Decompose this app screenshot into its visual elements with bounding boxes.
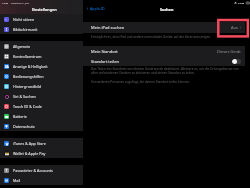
button[interactable]: Passwörter & Accounts — [0, 165, 83, 175]
button[interactable]: Touch ID & Code — [0, 101, 83, 111]
staticText: AA — [5, 65, 9, 69]
button[interactable]: Datenschutz — [0, 121, 83, 131]
button[interactable]: Apple-ID — [83, 6, 107, 11]
staticText: 14:35 — [2, 1, 9, 4]
button[interactable]: Wallet & Apple Pay — [0, 148, 83, 158]
staticText: Apple-ID — [90, 6, 105, 11]
staticText: Von anderen Personen zugefügt, die deine… — [91, 80, 190, 84]
button[interactable]: iTunes & App Store — [0, 138, 83, 148]
staticText: Mein Standort — [91, 49, 118, 54]
button[interactable]: Bildschirmzeit — [0, 24, 83, 34]
staticText: Dienstag 4. Juni — [11, 1, 30, 4]
button[interactable]: Standort teilen — [232, 59, 241, 64]
button[interactable]: Hintergrundbild — [0, 81, 83, 91]
button[interactable]: Allgemein — [0, 41, 83, 51]
staticText: Suchen — [160, 7, 174, 12]
button[interactable]: Mail — [0, 175, 83, 185]
button[interactable]: Kontrollzentrum — [0, 51, 83, 61]
button[interactable]: Nicht stören — [0, 14, 83, 24]
staticText: Passwörter & Accounts — [13, 168, 53, 173]
staticText: Einstellungen — [32, 7, 57, 12]
staticText: Aus — [231, 25, 238, 30]
button[interactable]: Siri & Suchen — [0, 91, 83, 101]
staticText: iTunes & App Store — [13, 141, 46, 146]
button[interactable]: Standort teilen — [83, 56, 245, 66]
staticText: Hintergrundbild — [13, 84, 41, 89]
staticText: Datenschutz — [13, 124, 35, 129]
staticText: Batterie — [13, 114, 27, 119]
staticText: Nicht stören — [13, 17, 35, 22]
staticText: Siri & Suchen — [13, 94, 36, 99]
staticText: Mein iPad suchen — [91, 25, 125, 30]
staticText: Standort teilen — [91, 59, 119, 64]
staticText: Touch ID & Code — [13, 104, 42, 109]
staticText: Allgemein — [13, 44, 31, 49]
button[interactable]: Mein Standort — [83, 46, 245, 56]
staticText: Mail — [13, 178, 21, 183]
staticText: Ermöglicht es, dein iPad und andere unte… — [91, 35, 211, 39]
staticText: Wallet & Apple Pay — [13, 151, 46, 156]
staticText: Anzeige & Helligkeit — [13, 64, 48, 69]
button[interactable]: Bedienungshilfen — [0, 71, 83, 81]
staticText: Dieses Gerät — [217, 49, 241, 54]
button[interactable]: Batterie — [0, 111, 83, 121]
button[interactable]: AA — [0, 61, 83, 71]
staticText: Bildschirmzeit — [13, 27, 38, 32]
staticText: 14:35 — [238, 1, 245, 4]
staticText: Bedienungshilfen — [13, 74, 44, 79]
staticText: Das Teilen des Standorts von diesem Gerä… — [91, 67, 245, 75]
button[interactable]: Mein iPad suchen — [83, 22, 245, 33]
staticText: Kontrollzentrum — [13, 54, 42, 59]
